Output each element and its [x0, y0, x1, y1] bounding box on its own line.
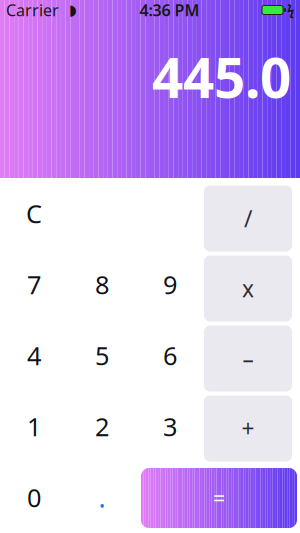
button[interactable]: 8 — [68, 249, 136, 320]
staticText: x — [242, 273, 254, 303]
button[interactable]: 0 — [0, 462, 68, 533]
staticText: 0 — [27, 481, 41, 514]
staticText: + — [241, 413, 254, 443]
staticText: = — [213, 484, 225, 512]
button[interactable]: Divide — [204, 185, 292, 251]
staticText: 3 — [163, 410, 177, 443]
button[interactable]: 4 — [0, 320, 68, 391]
staticText: 6 — [163, 339, 177, 372]
button[interactable]: 9 — [136, 249, 204, 320]
button[interactable]: 6 — [136, 320, 204, 391]
button[interactable]: 1 — [0, 391, 68, 462]
button[interactable]: Add — [204, 395, 292, 461]
staticText: / — [244, 203, 252, 233]
staticText: ◗ — [59, 2, 77, 18]
staticText: Carrier — [6, 0, 59, 21]
staticText: 4:36 PM — [139, 0, 199, 21]
button[interactable]: Equals — [141, 468, 297, 528]
button[interactable]: Multiply — [204, 255, 292, 321]
button[interactable]: . — [68, 462, 136, 533]
button[interactable] — [136, 462, 204, 533]
staticText: . — [98, 480, 105, 515]
staticText: 9 — [163, 268, 177, 301]
button[interactable]: C — [0, 178, 68, 249]
staticText: 4 — [27, 339, 41, 372]
button[interactable]: 3 — [136, 391, 204, 462]
staticText: 445.0 — [152, 40, 291, 113]
staticText: 5 — [95, 339, 109, 372]
staticText: – — [242, 343, 253, 373]
button[interactable]: Subtract — [204, 325, 292, 391]
staticText: 7 — [27, 268, 41, 301]
button[interactable]: 7 — [0, 249, 68, 320]
staticText: 1 — [27, 410, 41, 443]
staticText: 8 — [95, 268, 109, 301]
button[interactable]: 2 — [68, 391, 136, 462]
staticText: C — [26, 197, 42, 230]
staticText: 2 — [95, 410, 109, 443]
button[interactable]: 5 — [68, 320, 136, 391]
staticText: ϟ — [287, 1, 294, 19]
